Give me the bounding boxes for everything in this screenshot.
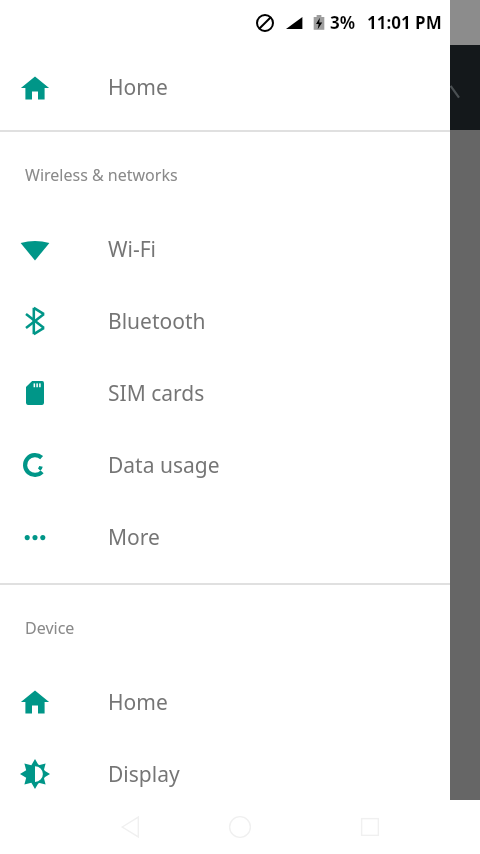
staticText: 3% — [330, 11, 356, 34]
other: Bluetooth — [20, 306, 50, 336]
staticText: Display — [108, 760, 180, 789]
staticText: 11:01 PM — [367, 11, 442, 34]
other: Display — [20, 759, 50, 789]
staticText: Home — [108, 73, 168, 102]
button[interactable]: Wi-Fi — [0, 213, 450, 285]
other: Home — [20, 687, 50, 717]
other: Home — [20, 73, 50, 103]
button[interactable]: Home — [0, 45, 450, 130]
button[interactable]: Bluetooth — [0, 285, 450, 357]
staticText: Bluetooth — [108, 307, 206, 336]
button[interactable]: Data usage — [0, 429, 450, 501]
button[interactable]: Display — [0, 738, 450, 810]
staticText: Wi-Fi — [108, 235, 157, 264]
staticText: SIM cards — [108, 379, 205, 408]
other: SIM cards — [20, 378, 50, 408]
staticText: Home — [108, 688, 168, 717]
button[interactable]: Home — [0, 666, 450, 738]
button[interactable]: More — [0, 501, 450, 573]
button[interactable]: SIM cards — [0, 357, 450, 429]
staticText: More — [108, 523, 160, 552]
staticText: Device — [25, 617, 75, 639]
other: Data usage — [20, 450, 50, 480]
staticText: Data usage — [108, 451, 220, 480]
staticText: Wireless & networks — [25, 164, 178, 186]
other: More — [20, 522, 50, 552]
other: Wi-Fi — [20, 234, 50, 264]
